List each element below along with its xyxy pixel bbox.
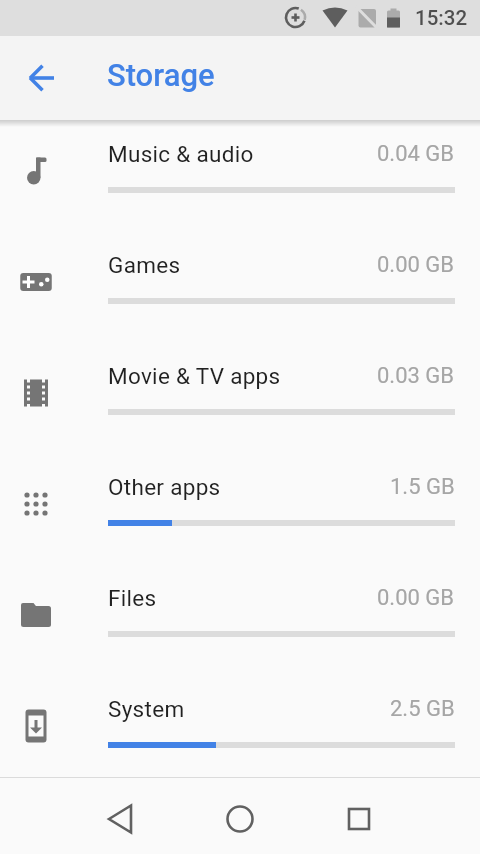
button[interactable]: Movie & TV apps bbox=[0, 342, 480, 453]
staticText: Files bbox=[108, 585, 157, 611]
staticText: Movie & TV apps bbox=[108, 363, 281, 389]
button[interactable] bbox=[18, 54, 66, 102]
staticText: 2.5 GB bbox=[390, 696, 455, 722]
button[interactable]: System bbox=[0, 675, 480, 786]
staticText: Music & audio bbox=[108, 141, 254, 167]
staticText: Games bbox=[108, 252, 181, 278]
staticText: 0.00 GB bbox=[377, 252, 455, 278]
staticText: Other apps bbox=[108, 474, 221, 500]
staticText: System bbox=[108, 696, 185, 722]
staticText: 0.00 GB bbox=[377, 585, 455, 611]
staticText: 0.04 GB bbox=[377, 141, 455, 167]
staticText: 0.03 GB bbox=[377, 363, 455, 389]
button[interactable] bbox=[335, 794, 383, 842]
staticText: 15:32 bbox=[415, 6, 468, 30]
button[interactable] bbox=[96, 794, 144, 842]
staticText: Storage bbox=[107, 57, 215, 93]
button[interactable]: Games bbox=[0, 231, 480, 342]
button[interactable] bbox=[216, 794, 264, 842]
staticText: 1.5 GB bbox=[390, 474, 455, 500]
button[interactable]: Files bbox=[0, 564, 480, 675]
button[interactable]: Other apps bbox=[0, 453, 480, 564]
button[interactable]: Music & audio bbox=[0, 120, 480, 231]
